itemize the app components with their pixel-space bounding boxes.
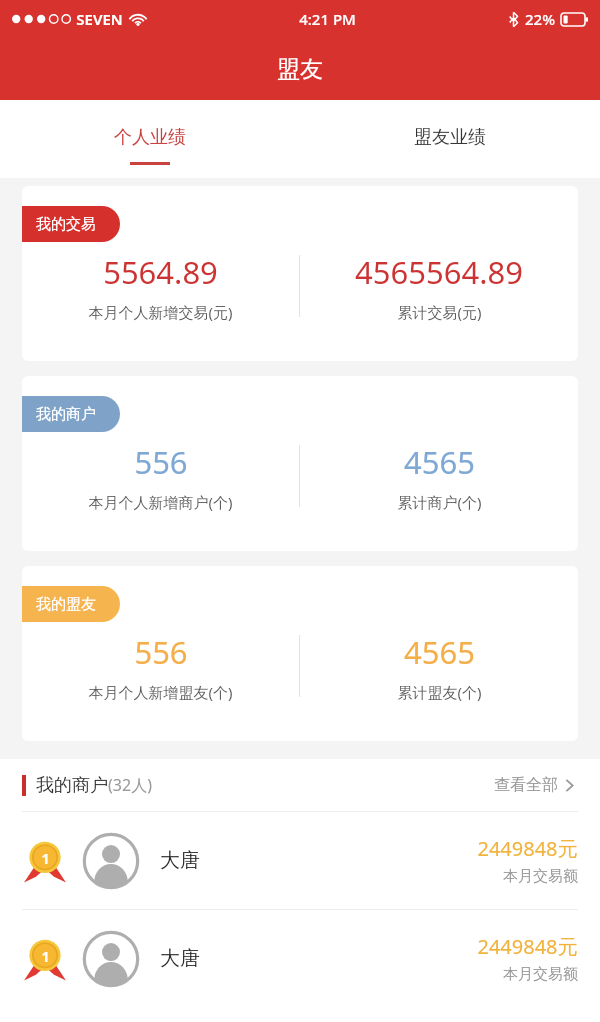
button[interactable]: 我的交易: [22, 186, 578, 361]
staticText: 5564.89: [103, 251, 218, 293]
staticText: 累计盟友(个): [397, 682, 482, 702]
staticText: 本月交易额: [503, 965, 578, 984]
staticText: 4565564.89: [355, 251, 523, 293]
staticText: 盟友: [277, 55, 323, 84]
other: Rank 1 medal: [22, 838, 68, 884]
button[interactable]: 我的商户: [22, 376, 578, 551]
button[interactable]: 个人业绩: [0, 100, 300, 178]
staticText: 查看全部: [494, 775, 558, 795]
staticText: 4565: [404, 441, 475, 483]
staticText: 我的盟友: [36, 595, 96, 614]
staticText: (32人): [108, 774, 152, 796]
staticText: 2449848元: [477, 933, 578, 960]
staticText: 大唐: [160, 848, 200, 873]
staticText: 累计商户(个): [397, 492, 482, 512]
staticText: 4565: [404, 631, 475, 673]
staticText: 2449848元: [477, 835, 578, 862]
staticText: 本月个人新增商户(个): [88, 492, 233, 512]
staticText: SEVEN: [76, 9, 123, 29]
staticText: 556: [134, 441, 188, 483]
staticText: 盟友业绩: [414, 126, 486, 149]
staticText: 22%: [525, 9, 555, 29]
staticText: 556: [134, 631, 188, 673]
staticText: 个人业绩: [114, 126, 186, 149]
other: Merchant avatar: [82, 930, 140, 988]
staticText: 累计交易(元): [397, 302, 482, 322]
staticText: 1: [41, 947, 50, 966]
staticText: 我的交易: [36, 215, 96, 234]
button[interactable]: Rank 1 medal: [22, 812, 578, 909]
other: Rank 1 medal: [22, 936, 68, 982]
button[interactable]: 我的盟友: [22, 566, 578, 741]
staticText: 我的商户: [36, 774, 108, 797]
button[interactable]: 盟友业绩: [300, 100, 600, 178]
button[interactable]: 查看全部: [490, 771, 578, 799]
staticText: 本月个人新增盟友(个): [88, 682, 233, 702]
staticText: 4:21 PM: [299, 9, 356, 29]
staticText: 本月个人新增交易(元): [88, 302, 233, 322]
other: Merchant avatar: [82, 832, 140, 890]
staticText: 大唐: [160, 946, 200, 971]
staticText: 1: [41, 849, 50, 868]
button[interactable]: Rank 1 medal: [22, 910, 578, 1007]
staticText: 我的商户: [36, 405, 96, 424]
staticText: 本月交易额: [503, 867, 578, 886]
